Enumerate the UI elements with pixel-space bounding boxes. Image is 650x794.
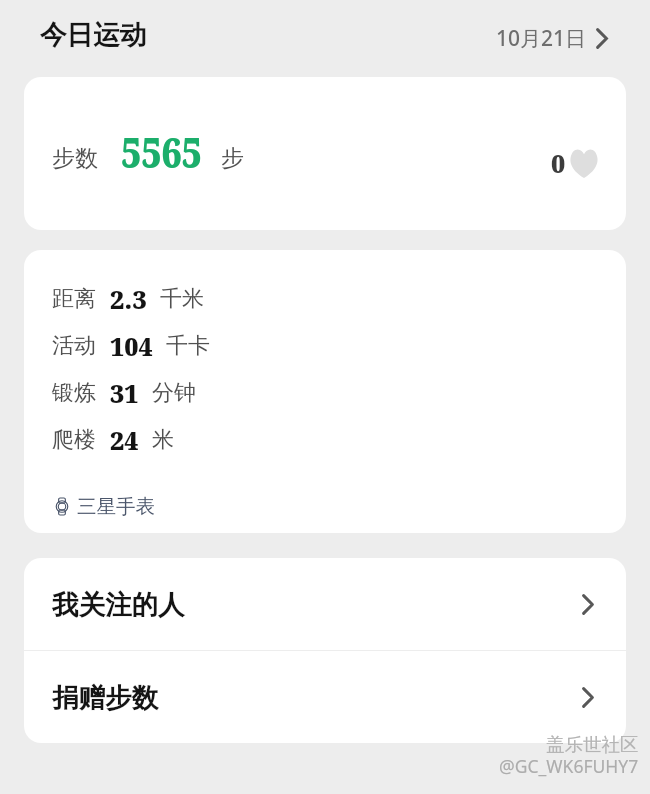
button[interactable]: 步数 xyxy=(24,77,626,230)
staticText: 2.3 xyxy=(110,282,147,316)
button[interactable]: 10月21日 xyxy=(496,24,608,53)
staticText: 千卡 xyxy=(166,332,210,360)
staticText: 0 xyxy=(551,146,566,180)
staticText: 步 xyxy=(221,144,244,173)
staticText: 盖乐世社区 xyxy=(546,733,639,754)
staticText: 步数 xyxy=(52,144,98,173)
button[interactable]: 捐赠步数 xyxy=(24,651,626,743)
staticText: 三星手表 xyxy=(77,494,155,519)
staticText: 31 xyxy=(110,376,139,410)
staticText: 5565 xyxy=(121,123,202,180)
staticText: 活动 xyxy=(52,332,96,360)
staticText: 米 xyxy=(152,426,174,454)
staticText: @GC_WK6FUHY7 xyxy=(499,754,639,778)
button[interactable]: Samsung watch xyxy=(52,494,155,519)
staticText: 104 xyxy=(110,329,153,363)
staticText: 距离 xyxy=(52,285,96,313)
staticText: 今日运动 xyxy=(40,18,146,51)
staticText: 千米 xyxy=(160,285,204,313)
staticText: 分钟 xyxy=(152,379,196,407)
staticText: 24 xyxy=(110,423,139,457)
staticText: 锻炼 xyxy=(52,379,96,407)
staticText: 捐赠步数 xyxy=(52,681,158,714)
button[interactable]: 我关注的人 xyxy=(24,558,626,650)
staticText: 爬楼 xyxy=(52,426,96,454)
other: Samsung watch xyxy=(56,498,68,515)
staticText: 我关注的人 xyxy=(52,588,185,621)
staticText: 10月21日 xyxy=(496,24,587,53)
